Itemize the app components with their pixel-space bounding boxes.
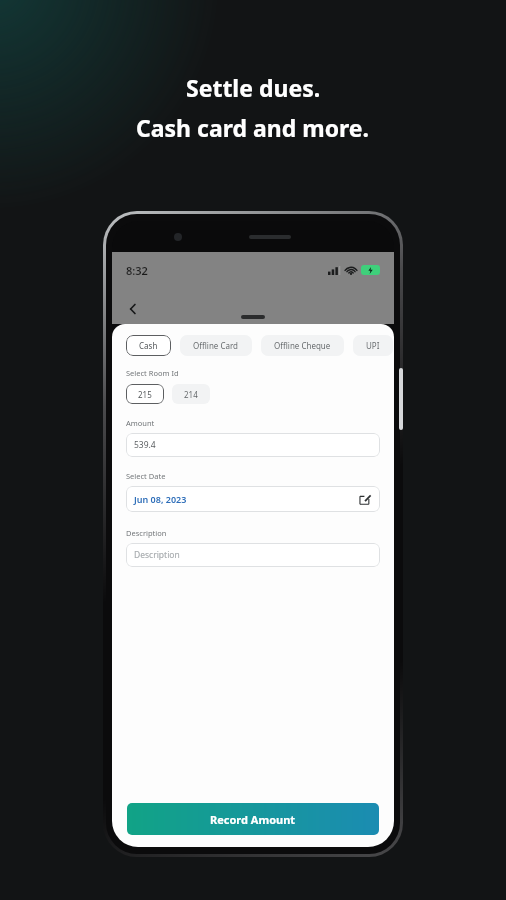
button[interactable]: 539.4 [126, 433, 380, 457]
button[interactable]: Edit date [358, 492, 372, 506]
staticText: Offline Card [193, 340, 239, 351]
staticText: 539.4 [134, 439, 156, 451]
staticText: 215 [138, 389, 152, 400]
staticText: 8:32 [126, 263, 148, 278]
staticText: 214 [184, 389, 198, 400]
staticText: Amount [126, 418, 155, 428]
staticText: Cash card and more. [136, 112, 370, 143]
staticText: UPI [366, 340, 380, 351]
staticText: Select Date [126, 471, 166, 481]
button[interactable]: 215 [126, 384, 164, 404]
staticText: Record Amount [210, 812, 296, 827]
staticText: Cash [139, 340, 158, 351]
button[interactable]: Offline Cheque [261, 335, 344, 356]
button[interactable]: Back [120, 296, 146, 322]
button[interactable]: Jun 08, 2023 [126, 486, 380, 512]
staticText: Description [134, 549, 180, 561]
button[interactable]: UPI [353, 335, 393, 356]
button[interactable]: Record Amount [127, 803, 379, 835]
staticText: Settle dues. [186, 72, 321, 103]
button[interactable]: Offline Card [180, 335, 252, 356]
staticText: Offline Cheque [274, 340, 331, 351]
staticText: Jun 08, 2023 [134, 493, 187, 505]
staticText: Select Room Id [126, 368, 179, 378]
button[interactable]: Cash [126, 335, 171, 356]
button[interactable]: Description [126, 543, 380, 567]
button[interactable]: 214 [172, 384, 210, 404]
staticText: Description [126, 528, 167, 538]
